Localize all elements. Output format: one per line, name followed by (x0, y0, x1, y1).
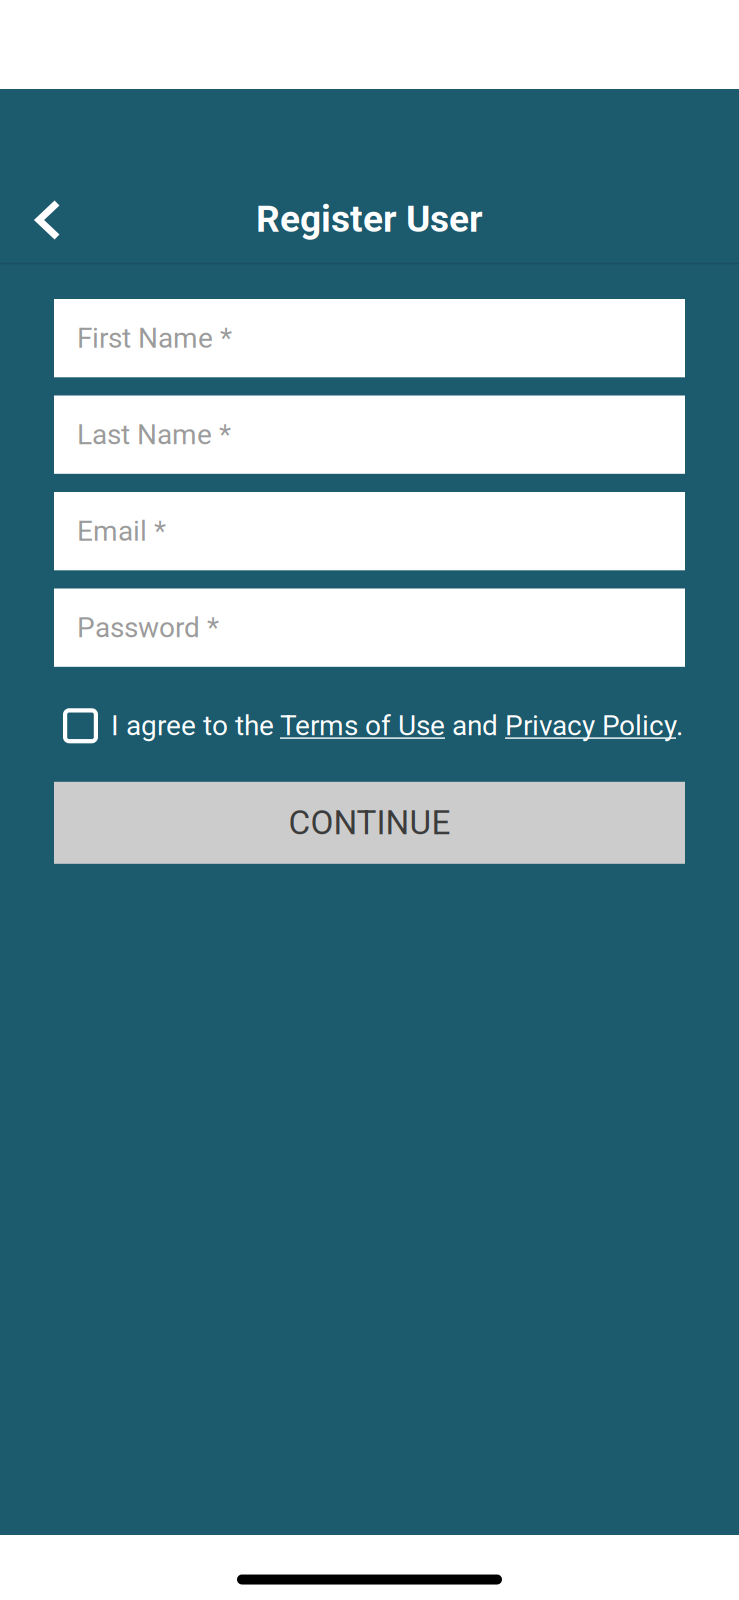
staticText: Register User (256, 197, 483, 241)
button[interactable]: I agree to the Terms of Use and Privacy … (111, 709, 683, 742)
button[interactable]: I agree to the Terms of Use and Privacy … (63, 708, 111, 743)
staticText: Last Name * (77, 418, 231, 451)
button[interactable]: CONTINUE (54, 782, 685, 864)
button[interactable]: Back (0, 184, 72, 256)
staticText: CONTINUE (288, 803, 450, 842)
button[interactable]: First Name * (54, 299, 685, 377)
button[interactable]: Password * (54, 588, 685, 667)
staticText: Email * (77, 515, 166, 547)
button[interactable]: Email * (54, 492, 685, 570)
staticText: Password * (77, 611, 219, 644)
button[interactable]: Last Name * (54, 395, 685, 474)
staticText: First Name * (77, 322, 232, 354)
staticText: I agree to the Terms of Use and Privacy … (111, 709, 683, 742)
